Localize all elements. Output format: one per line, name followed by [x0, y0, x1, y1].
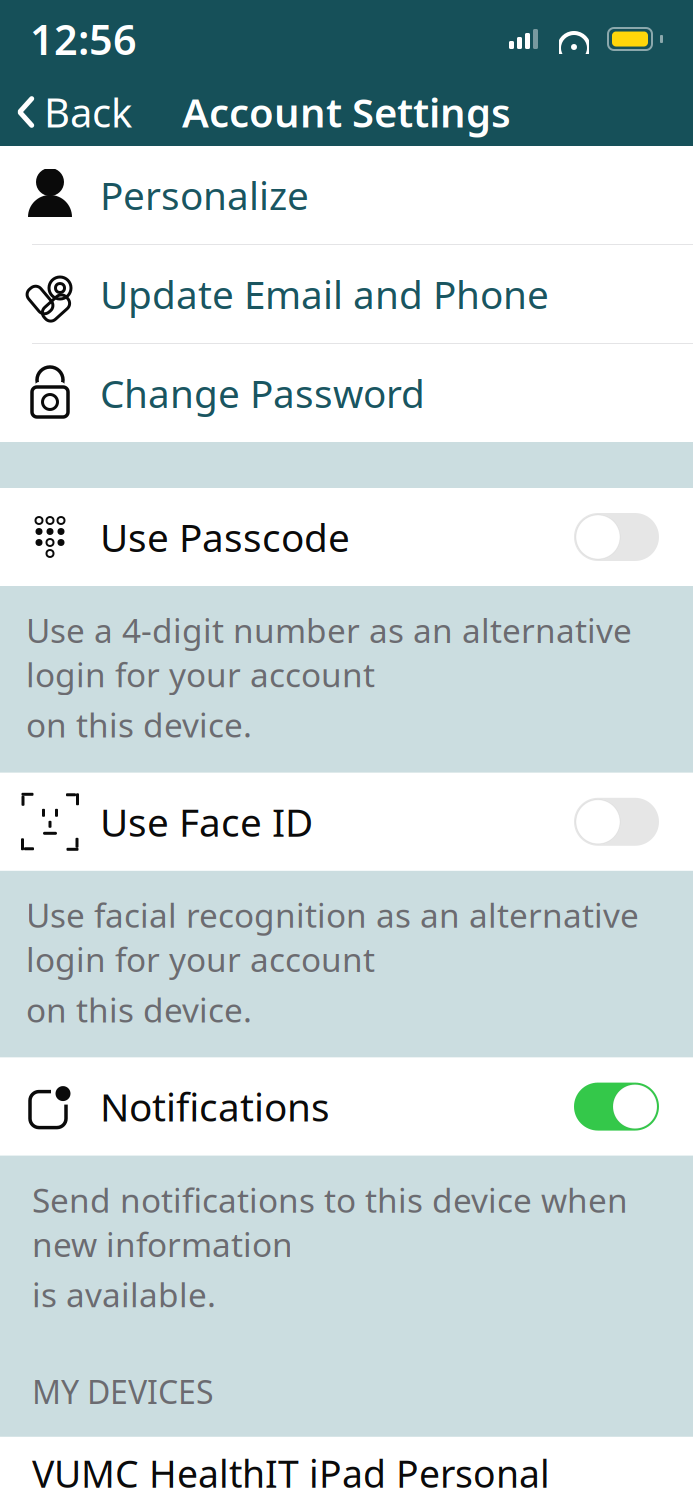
staticText: Use Passcode: [100, 511, 350, 563]
button[interactable]: Use Passcode: [0, 488, 693, 586]
staticText: VUMC HealthIT iPad Personal: [32, 1449, 550, 1498]
button[interactable]: VUMC HealthIT iPad Personal: [0, 1437, 693, 1500]
staticText: Use facial recognition as an alternative…: [26, 893, 639, 981]
staticText: Use a 4-digit number as an alternative l…: [26, 608, 632, 696]
staticText: is available.: [32, 1272, 216, 1316]
staticText: Use Face ID: [100, 796, 313, 847]
staticText: MY DEVICES: [32, 1370, 214, 1413]
staticText: Update Email and Phone: [100, 268, 549, 320]
staticText: Personalize: [100, 169, 309, 221]
staticText: 12:56: [30, 12, 137, 66]
button[interactable]: Use Face ID: [0, 773, 693, 871]
button[interactable]: Notifications: [0, 1058, 693, 1156]
staticText: Change Password: [100, 367, 425, 419]
staticText: Back: [44, 85, 132, 138]
button[interactable]: Update Email and Phone: [0, 245, 693, 343]
button[interactable]: Change Password: [0, 344, 693, 442]
staticText: Account Settings: [182, 85, 511, 138]
staticText: Notifications: [100, 1081, 330, 1132]
staticText: on this device.: [26, 702, 252, 747]
staticText: Send notifications to this device when n…: [32, 1178, 628, 1266]
staticText: on this device.: [26, 987, 252, 1032]
button[interactable]: Personalize: [0, 146, 693, 244]
button[interactable]: Back: [0, 75, 132, 148]
